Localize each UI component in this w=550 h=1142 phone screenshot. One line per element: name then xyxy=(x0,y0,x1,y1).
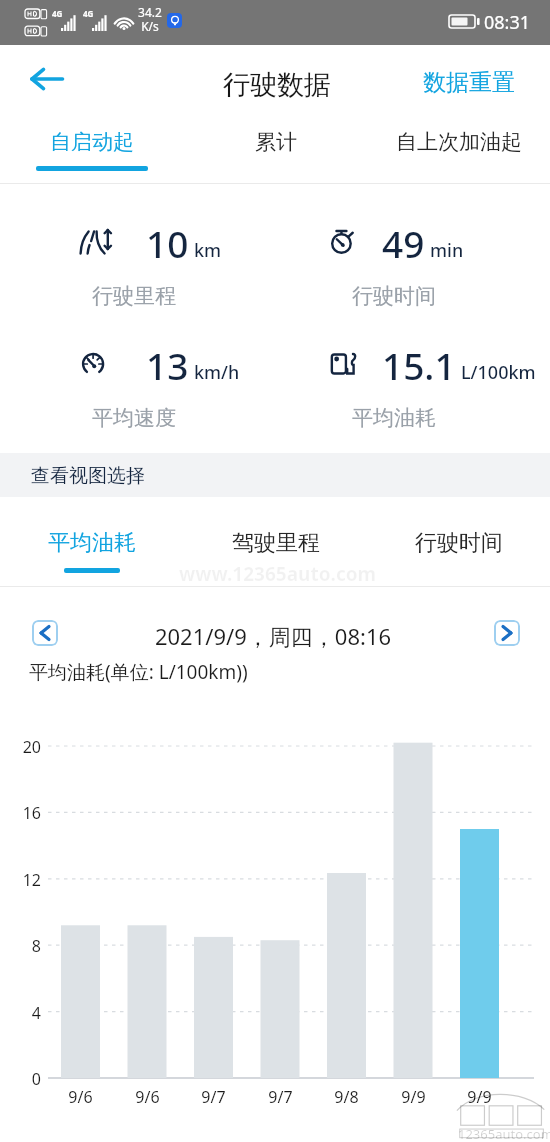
staticText: 4 xyxy=(8,1002,41,1024)
staticText: 15.1 xyxy=(382,340,456,390)
staticText: 34.2 K/s xyxy=(138,4,162,35)
staticText: 查看视图选择 xyxy=(31,464,145,488)
button[interactable]: 累计 xyxy=(184,113,367,183)
staticText: km/h xyxy=(194,360,240,385)
staticText: min xyxy=(430,238,464,263)
staticText: 平均油耗(单位: L/100km)) xyxy=(29,659,248,685)
staticText: 4G xyxy=(83,8,94,19)
staticText: 自启动起 xyxy=(50,129,134,155)
button[interactable]: 平均油耗 xyxy=(0,497,184,587)
button[interactable]: Back xyxy=(15,57,63,101)
staticText: 驾驶里程 xyxy=(232,529,320,557)
button[interactable]: 行驶时间 xyxy=(367,497,550,587)
button[interactable]: 驾驶里程 xyxy=(184,497,367,587)
staticText: 9/6 xyxy=(55,1086,106,1108)
staticText: 数据重置 xyxy=(423,68,515,97)
staticText: 行驶时间 xyxy=(415,529,503,557)
staticText: 16 xyxy=(8,802,41,824)
staticText: 自上次加油起 xyxy=(396,129,522,155)
staticText: 4G xyxy=(52,8,63,19)
staticText: L/100km xyxy=(461,360,536,385)
staticText: 20 xyxy=(8,736,41,758)
staticText: 9/8 xyxy=(321,1086,372,1108)
staticText: 2021/9/9，周四，08:16 xyxy=(0,621,548,651)
staticText: 8 xyxy=(8,935,41,957)
staticText: 08:31 xyxy=(484,10,531,35)
staticText: 9/6 xyxy=(122,1086,173,1108)
staticText: 0 xyxy=(8,1068,41,1090)
staticText: 平均油耗 xyxy=(352,405,436,431)
staticText: km xyxy=(194,238,222,263)
staticText: 49 xyxy=(382,218,425,268)
staticText: www.12365auto.com xyxy=(179,561,377,587)
button[interactable]: 自上次加油起 xyxy=(367,113,550,183)
staticText: 9/9 xyxy=(388,1086,439,1108)
button[interactable]: 数据重置 xyxy=(423,68,515,97)
staticText: 9/7 xyxy=(188,1086,239,1108)
staticText: 9/7 xyxy=(255,1086,306,1108)
staticText: 12 xyxy=(8,869,41,891)
staticText: 12365auto.com xyxy=(458,1125,550,1142)
button[interactable]: Previous xyxy=(32,620,58,646)
staticText: 行驶里程 xyxy=(92,283,176,309)
button[interactable]: Next xyxy=(494,620,520,646)
staticText: 累计 xyxy=(255,129,297,155)
staticText: 行驶时间 xyxy=(352,283,436,309)
staticText: 13 xyxy=(146,340,189,390)
button[interactable]: 自启动起 xyxy=(0,113,184,183)
staticText: 平均速度 xyxy=(92,405,176,431)
staticText: 10 xyxy=(146,218,189,268)
staticText: 平均油耗 xyxy=(48,529,136,557)
staticText: 9/9 xyxy=(454,1086,505,1108)
staticText: 行驶数据 xyxy=(2,68,550,102)
